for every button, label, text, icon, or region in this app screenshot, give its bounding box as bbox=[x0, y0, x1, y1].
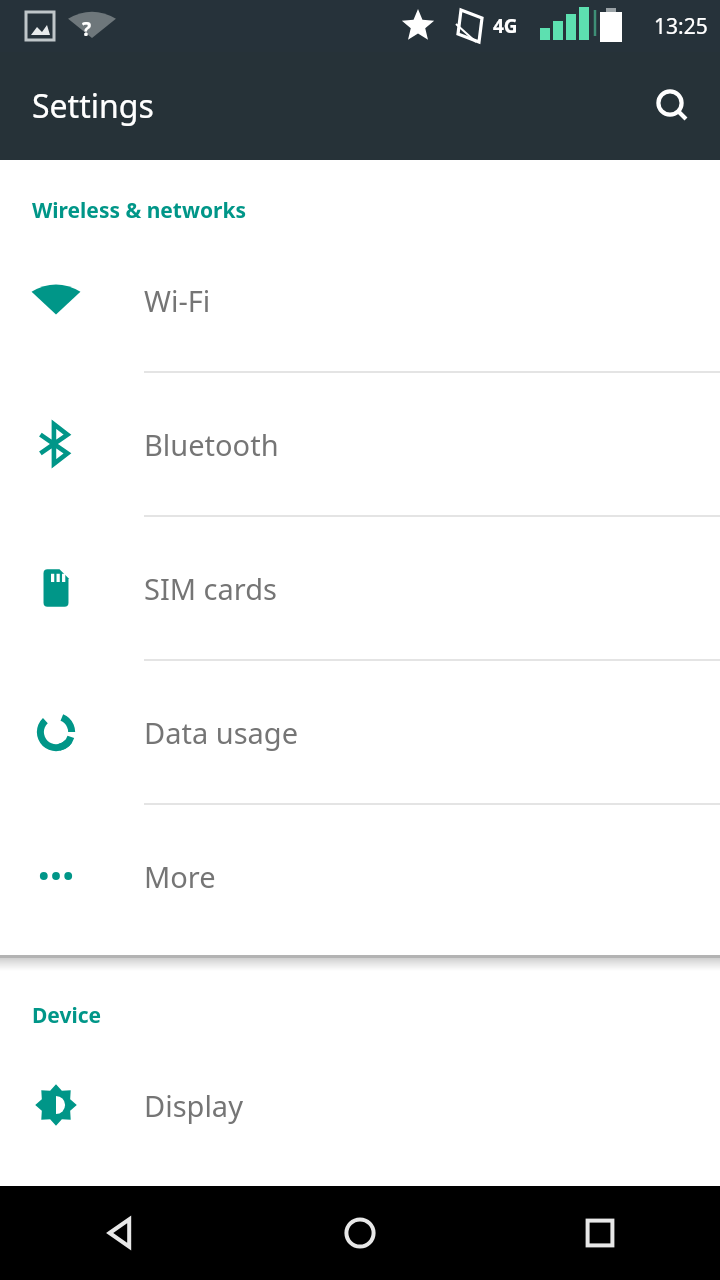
staticText: Display bbox=[144, 1086, 243, 1125]
button[interactable]: Data usage bbox=[0, 661, 720, 803]
staticText: Bluetooth bbox=[144, 425, 279, 464]
staticText: Wi-Fi bbox=[144, 281, 211, 320]
button[interactable]: More bbox=[0, 805, 720, 947]
staticText: Data usage bbox=[144, 713, 298, 752]
button[interactable]: Wi-Fi bbox=[0, 229, 720, 371]
staticText: Settings bbox=[32, 84, 154, 128]
button[interactable]: Home bbox=[240, 1186, 480, 1280]
button[interactable]: Back bbox=[0, 1186, 240, 1280]
staticText: More bbox=[144, 857, 216, 896]
button[interactable]: Bluetooth bbox=[0, 373, 720, 515]
staticText: 4G bbox=[493, 13, 518, 39]
button[interactable]: Recent apps bbox=[480, 1186, 720, 1280]
staticText: ? bbox=[82, 16, 92, 42]
button[interactable]: Display bbox=[0, 1034, 720, 1176]
button[interactable]: SIM cards bbox=[0, 517, 720, 659]
button[interactable]: Search bbox=[644, 78, 700, 134]
staticText: Wireless & networks bbox=[32, 196, 246, 225]
staticText: SIM cards bbox=[144, 569, 277, 608]
staticText: 13:25 bbox=[654, 12, 708, 41]
staticText: Device bbox=[32, 1001, 102, 1030]
